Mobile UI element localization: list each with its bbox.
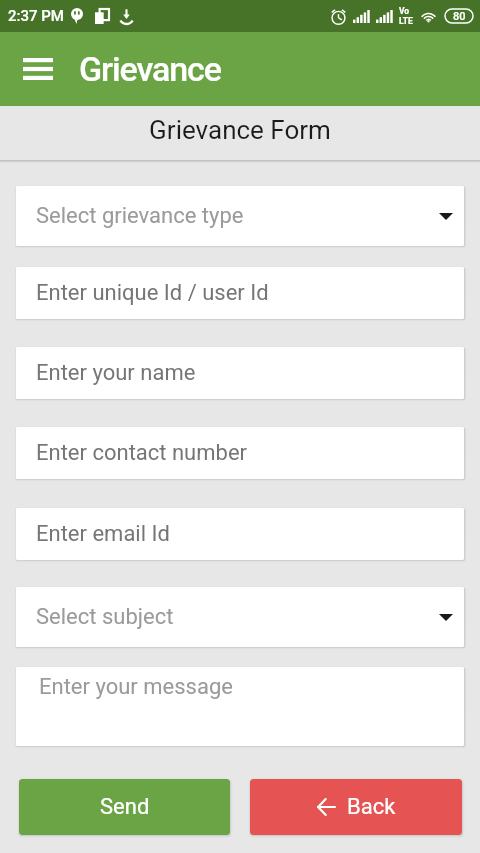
staticText: Enter your name — [36, 360, 196, 386]
staticText: 2:37 PM — [8, 7, 64, 25]
button[interactable]: Send — [19, 779, 230, 835]
staticText: Grievance — [79, 49, 221, 89]
staticText: Grievance Form — [149, 115, 331, 145]
staticText: Select grievance type — [36, 203, 244, 229]
button[interactable]: Open navigation menu — [13, 44, 63, 94]
staticText: Send — [100, 794, 150, 820]
button[interactable]: Select subject — [16, 587, 464, 647]
button[interactable]: Enter your name — [16, 347, 464, 399]
staticText: Vo — [399, 6, 410, 16]
button[interactable]: Back — [250, 779, 462, 835]
staticText: LTE — [399, 16, 413, 26]
staticText: Select subject — [36, 604, 174, 630]
button[interactable]: Enter email Id — [16, 508, 464, 560]
staticText: Enter your message — [39, 674, 233, 700]
button[interactable]: Enter contact number — [16, 427, 464, 479]
button[interactable]: Select grievance type — [16, 186, 464, 246]
button[interactable]: Enter your message — [16, 667, 464, 746]
button[interactable]: Enter unique Id / user Id — [16, 267, 464, 319]
staticText: Enter unique Id / user Id — [36, 280, 269, 306]
staticText: Enter contact number — [36, 440, 248, 466]
staticText: 80 — [453, 10, 466, 23]
staticText: Enter email Id — [36, 521, 170, 547]
staticText: Back — [347, 794, 396, 820]
